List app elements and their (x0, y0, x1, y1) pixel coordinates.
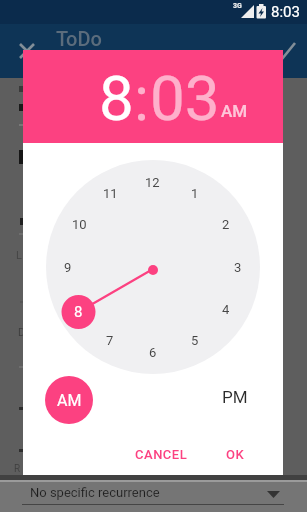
button[interactable]: 4 (214, 300, 238, 318)
button[interactable]: 2 (214, 215, 238, 233)
staticText: PM (222, 387, 248, 407)
staticText: 9 (64, 260, 72, 275)
button[interactable]: 7 (98, 331, 122, 349)
button[interactable]: AM (45, 376, 93, 424)
button[interactable]: OK (219, 442, 251, 466)
staticText: ToDo (56, 27, 102, 50)
button[interactable]: 11 (98, 184, 122, 202)
staticText: 8 (99, 62, 134, 135)
button[interactable]: 1 (183, 184, 207, 202)
staticText: 4 (222, 302, 230, 317)
staticText: 7 (106, 333, 114, 348)
button[interactable]: 9 (56, 258, 80, 276)
staticText: No specific recurrence (30, 485, 160, 500)
button[interactable]: PM (213, 383, 257, 411)
staticText: 11 (103, 186, 118, 201)
staticText: AM (221, 101, 248, 121)
button[interactable]: No specific recurrence (0, 480, 307, 512)
staticText: OK (226, 447, 245, 462)
staticText: R (14, 463, 21, 475)
staticText: 8:03 (271, 3, 300, 21)
button[interactable] (13, 37, 41, 65)
staticText: D (18, 326, 26, 339)
staticText: 2 (222, 217, 230, 232)
staticText: 3 (234, 260, 242, 275)
staticText: 12 (145, 175, 160, 190)
staticText: 8 (74, 303, 83, 321)
staticText: 3G (233, 2, 242, 10)
button[interactable] (271, 37, 299, 65)
button[interactable]: 12 (140, 173, 164, 191)
button[interactable]: 5 (183, 331, 207, 349)
staticText: 1 (191, 186, 199, 201)
staticText: CANCEL (135, 447, 188, 462)
button[interactable]: 8 (66, 303, 90, 321)
button[interactable]: 6 (141, 343, 165, 361)
staticText: 10 (72, 217, 87, 232)
staticText: : (134, 62, 150, 135)
staticText: 6 (149, 345, 157, 360)
staticText: AM (57, 391, 82, 410)
button[interactable]: 3 (226, 258, 250, 276)
button[interactable]: CANCEL (121, 442, 201, 466)
staticText: L (16, 249, 22, 262)
staticText: 03 (150, 62, 220, 135)
button[interactable]: 10 (67, 215, 91, 233)
staticText: 5 (191, 333, 199, 348)
